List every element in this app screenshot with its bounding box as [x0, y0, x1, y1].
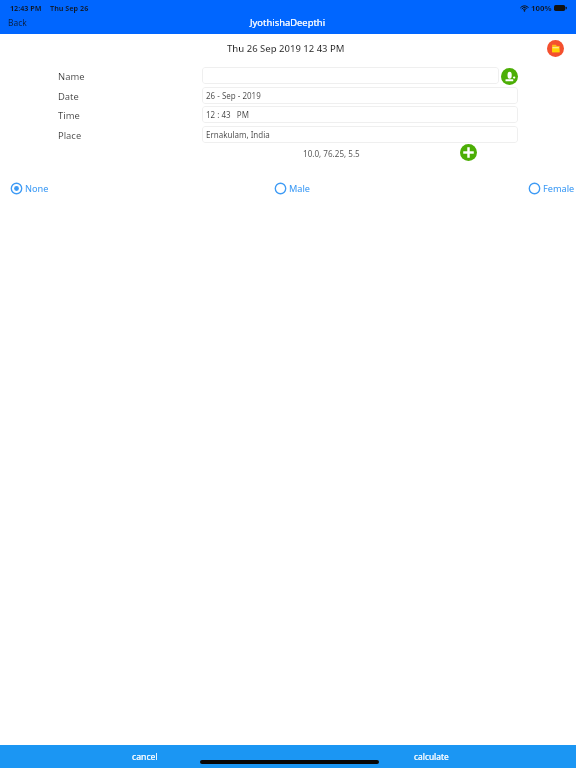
button[interactable]: Ernakulam, India — [202, 126, 518, 143]
staticText: Place — [58, 129, 82, 142]
staticText: Name — [58, 70, 85, 83]
staticText: Male — [289, 182, 311, 195]
staticText: cancel — [132, 751, 158, 763]
staticText: None — [25, 182, 49, 195]
button[interactable]: 12 : 43 PM — [202, 106, 518, 123]
staticText: Back — [8, 17, 27, 28]
staticText: Time — [58, 109, 80, 122]
staticText: Date — [58, 90, 79, 103]
button[interactable]: Pick contact — [501, 68, 518, 85]
button[interactable]: Back — [5, 16, 30, 29]
button[interactable]: Female — [528, 182, 575, 195]
button[interactable]: None — [10, 182, 49, 195]
staticText: 12:43 PM — [10, 3, 42, 13]
button[interactable]: Add place — [460, 144, 477, 161]
staticText: 26 - Sep - 2019 — [206, 90, 261, 101]
staticText: calculate — [414, 751, 449, 762]
staticText: Female — [543, 182, 575, 195]
staticText: Ernakulam, India — [206, 129, 270, 140]
button[interactable]: Open saved files — [547, 40, 564, 57]
staticText: Thu Sep 26 — [50, 3, 89, 13]
staticText: 10.0, 76.25, 5.5 — [303, 148, 360, 159]
staticText: Thu 26 Sep 2019 12 43 PM — [227, 42, 345, 55]
button[interactable]: calculate — [410, 750, 453, 763]
staticText: 12 : 43 PM — [206, 109, 249, 120]
button[interactable] — [202, 67, 499, 84]
staticText: 100% — [531, 3, 552, 13]
button[interactable]: Male — [274, 182, 311, 195]
staticText: JyothishaDeepthi — [250, 16, 326, 29]
button[interactable]: 26 - Sep - 2019 — [202, 87, 518, 104]
button[interactable]: cancel — [128, 750, 162, 764]
